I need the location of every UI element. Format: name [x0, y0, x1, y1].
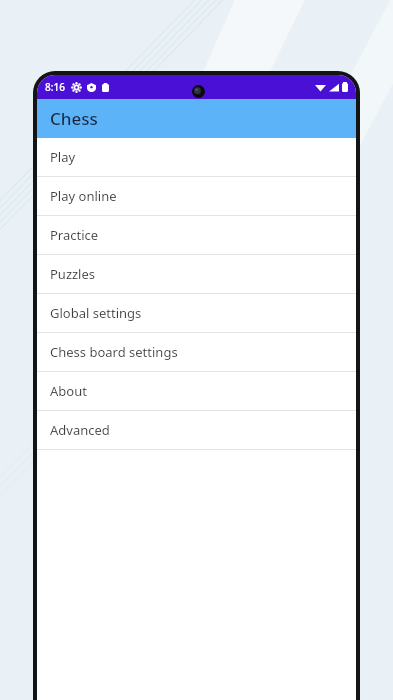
- staticText: Global settings: [50, 304, 142, 322]
- button[interactable]: Puzzles: [37, 255, 356, 293]
- button[interactable]: Advanced: [37, 411, 356, 449]
- staticText: Advanced: [50, 421, 110, 439]
- button[interactable]: Practice: [37, 216, 356, 254]
- button[interactable]: Global settings: [37, 294, 356, 332]
- button[interactable]: Play: [37, 138, 356, 176]
- button[interactable]: Chess board settings: [37, 333, 356, 371]
- staticText: Chess: [50, 107, 98, 130]
- button[interactable]: About: [37, 372, 356, 410]
- staticText: Puzzles: [50, 265, 96, 283]
- staticText: Play online: [50, 187, 117, 205]
- staticText: 8:16: [45, 80, 65, 94]
- staticText: Play: [50, 148, 76, 166]
- staticText: Practice: [50, 226, 99, 244]
- staticText: About: [50, 382, 87, 400]
- staticText: Chess board settings: [50, 343, 178, 361]
- button[interactable]: Play online: [37, 177, 356, 215]
